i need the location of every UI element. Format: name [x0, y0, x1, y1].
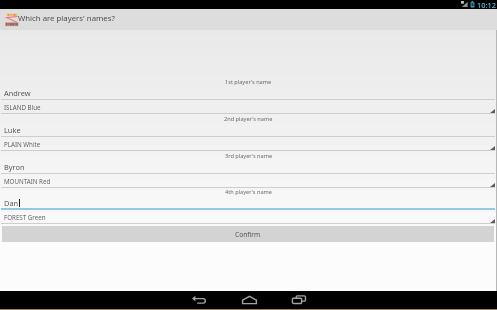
staticText: PLAIN White — [4, 140, 41, 148]
staticText: Byron — [4, 162, 25, 172]
button[interactable]: Andrew — [1, 86, 495, 100]
staticText: 10:12 — [477, 0, 496, 9]
button[interactable]: Luke — [1, 123, 495, 137]
staticText: Confirm — [235, 230, 261, 239]
button[interactable]: Byron — [1, 160, 495, 174]
staticText: 2nd player's name — [224, 115, 273, 123]
staticText: Which are players' names? — [18, 13, 115, 24]
button[interactable]: Home — [224, 291, 274, 308]
staticText: MOUNTAIN Red — [4, 177, 51, 185]
button[interactable]: Confirm — [2, 226, 494, 242]
staticText: 3rd player's name — [225, 152, 273, 160]
button[interactable]: PLAIN White — [1, 137, 495, 151]
staticText: Andrew — [4, 88, 31, 98]
staticText: 1st player's name — [225, 78, 272, 86]
button[interactable]: Back — [174, 291, 224, 308]
button[interactable]: Dan — [1, 196, 495, 210]
button[interactable]: FOREST Green — [1, 210, 495, 224]
button[interactable]: MOUNTAIN Red — [1, 174, 495, 188]
staticText: ISLAND Blue — [4, 103, 41, 111]
staticText: Dan — [4, 198, 19, 208]
staticText: Luke — [4, 125, 21, 135]
button[interactable]: Recent apps — [274, 291, 324, 308]
button[interactable]: ISLAND Blue — [1, 100, 495, 114]
staticText: 4th player's name — [225, 188, 272, 196]
staticText: FOREST Green — [4, 213, 46, 221]
